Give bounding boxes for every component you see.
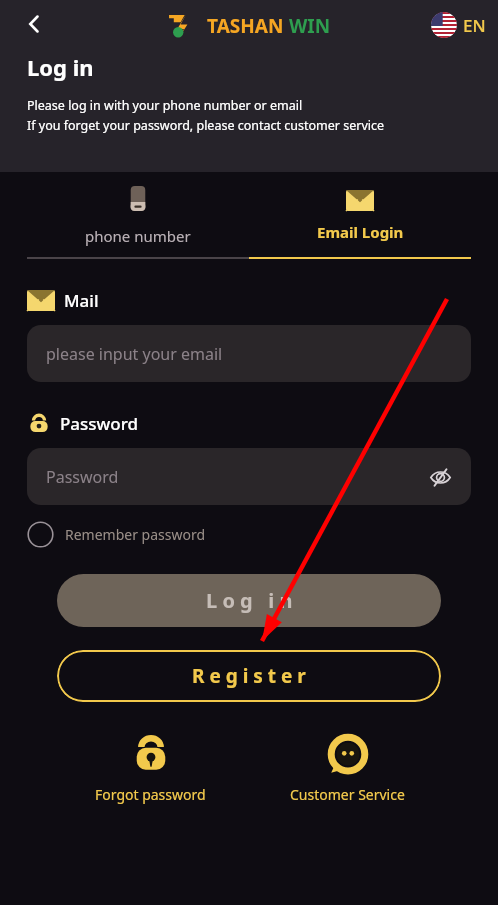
staticText: please input your email — [46, 343, 223, 365]
staticText: WIN — [289, 13, 331, 39]
staticText: phone number — [85, 226, 191, 246]
staticText: Password — [46, 466, 119, 488]
staticText: Email Login — [317, 222, 404, 242]
button[interactable]: Email Login — [249, 186, 471, 253]
staticText: Mail — [64, 289, 99, 312]
staticText: Password — [60, 412, 139, 435]
button[interactable]: Show password — [423, 460, 457, 494]
button[interactable]: Forgot password — [52, 734, 249, 804]
staticText: Please log in with your phone number or … — [27, 97, 303, 114]
button[interactable]: Customer Service — [249, 734, 446, 804]
staticText: Forgot password — [95, 785, 206, 804]
button[interactable]: EN — [431, 12, 486, 38]
button[interactable]: R e g i s t e r — [57, 650, 441, 702]
button[interactable]: Password — [27, 448, 471, 505]
staticText: L o g i n — [206, 587, 293, 614]
button[interactable]: phone number — [27, 186, 249, 257]
staticText: If you forget your password, please cont… — [27, 117, 385, 134]
staticText: R e g i s t e r — [192, 663, 306, 689]
staticText: EN — [463, 14, 486, 37]
staticText: Customer Service — [290, 785, 405, 804]
button[interactable]: please input your email — [27, 325, 471, 382]
staticText: TASHAN — [207, 13, 284, 39]
staticText: Remember password — [65, 525, 206, 544]
staticText: Log in — [27, 52, 94, 82]
button[interactable]: Back — [10, 0, 58, 48]
button[interactable]: L o g i n — [57, 574, 441, 627]
button[interactable]: Remember password — [27, 521, 206, 548]
